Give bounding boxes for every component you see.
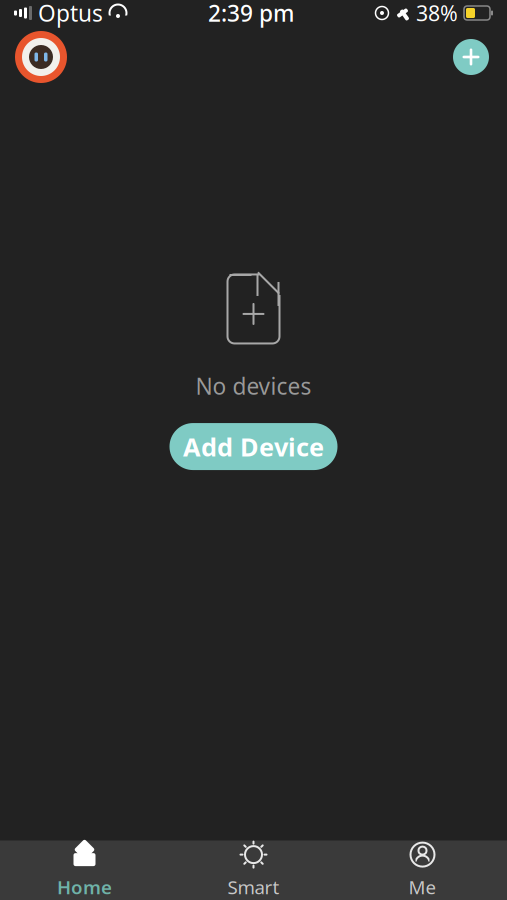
staticText: Add Device — [183, 430, 324, 463]
staticText: No devices — [195, 371, 311, 401]
staticText: Smart — [227, 875, 279, 899]
button[interactable]: Add — [449, 35, 493, 79]
button[interactable]: Profile — [14, 30, 68, 84]
button[interactable]: Add Device — [169, 423, 337, 470]
staticText: Optus — [38, 0, 103, 28]
button[interactable]: Home — [0, 841, 169, 899]
staticText: Home — [57, 875, 112, 899]
button[interactable]: Smart — [169, 841, 338, 899]
button[interactable]: Me — [338, 841, 507, 899]
staticText: 2:39 pm — [208, 0, 294, 28]
staticText: 38% — [416, 0, 458, 27]
staticText: Me — [408, 875, 436, 899]
